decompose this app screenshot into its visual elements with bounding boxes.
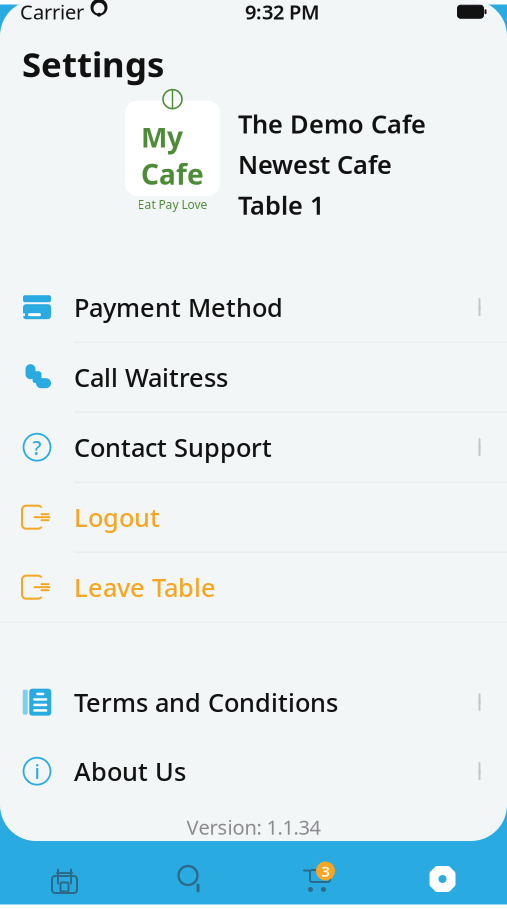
- button[interactable]: i: [0, 737, 507, 806]
- staticText: My Cafe: [141, 118, 204, 192]
- button[interactable]: Search: [127, 849, 253, 909]
- button[interactable]: Leave Table: [0, 553, 507, 623]
- staticText: Table 1: [238, 188, 324, 222]
- button[interactable]: Terms and Conditions: [0, 668, 507, 737]
- staticText: 9:32 PM: [245, 0, 320, 25]
- staticText: Eat Pay Love: [137, 196, 207, 212]
- staticText: Contact Support: [74, 430, 272, 464]
- staticText: i: [34, 758, 39, 784]
- staticText: The Demo Cafe: [238, 107, 426, 140]
- staticText: Newest Cafe: [238, 147, 392, 181]
- staticText: Logout: [74, 500, 160, 534]
- button[interactable]: Settings: [379, 849, 505, 909]
- staticText: 3: [321, 861, 329, 881]
- staticText: Settings: [22, 41, 164, 87]
- staticText: Terms and Conditions: [74, 685, 338, 719]
- staticText: ?: [32, 434, 41, 460]
- staticText: About Us: [74, 754, 186, 788]
- staticText: Call Waitress: [74, 360, 228, 394]
- staticText: Payment Method: [74, 290, 283, 324]
- staticText: Carrier: [20, 0, 84, 25]
- staticText: Version: 1.1.34: [186, 814, 320, 840]
- button[interactable]: Cart, 3 items: [253, 849, 379, 909]
- button[interactable]: Payment Method: [0, 273, 507, 343]
- button[interactable]: Logout: [0, 483, 507, 553]
- button[interactable]: ?: [0, 413, 507, 483]
- button[interactable]: Call Waitress: [0, 343, 507, 413]
- staticText: Leave Table: [74, 570, 216, 604]
- button[interactable]: Home: [1, 849, 127, 909]
